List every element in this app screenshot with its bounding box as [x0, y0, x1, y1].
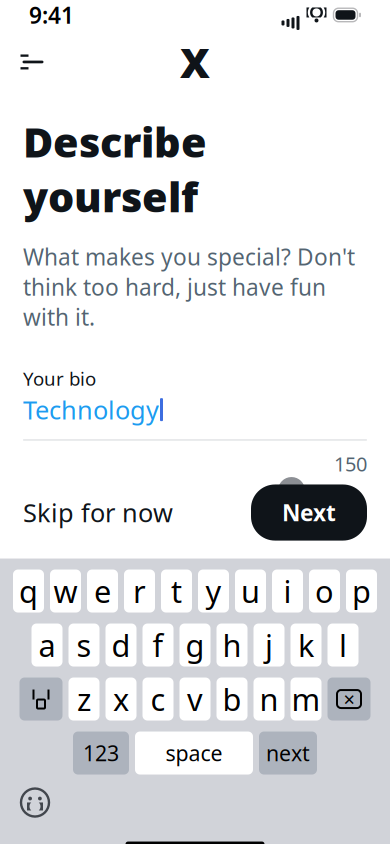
button[interactable]: Next	[251, 484, 367, 541]
staticText: next	[266, 739, 310, 767]
staticText: m	[291, 679, 320, 719]
button[interactable]: v	[179, 677, 210, 720]
staticText: a	[38, 625, 55, 665]
button[interactable]: Shift	[19, 677, 62, 720]
button[interactable]: next	[259, 731, 317, 774]
button[interactable]: c	[142, 677, 173, 720]
button[interactable]: g	[179, 623, 210, 666]
button[interactable]: w	[50, 569, 81, 612]
button[interactable]: Back	[11, 40, 55, 84]
button[interactable]: Skip for now	[23, 484, 173, 541]
staticText: o	[315, 571, 334, 611]
button[interactable]: l	[327, 623, 358, 666]
staticText: g	[185, 625, 204, 665]
staticText: t	[171, 571, 182, 611]
staticText: l	[339, 625, 347, 665]
staticText: i	[283, 571, 291, 611]
staticText: w	[53, 571, 77, 611]
staticText: j	[265, 625, 273, 665]
staticText: Next	[282, 497, 336, 528]
button[interactable]: p	[346, 569, 377, 612]
button[interactable]: Emoji keyboard	[12, 785, 58, 819]
button[interactable]: i	[272, 569, 303, 612]
staticText: p	[352, 571, 371, 611]
staticText: z	[77, 679, 91, 719]
staticText: Your bio	[23, 366, 96, 391]
staticText: Technology	[23, 393, 159, 426]
staticText: u	[241, 571, 260, 611]
staticText: f	[152, 625, 163, 665]
staticText: r	[133, 571, 146, 611]
button[interactable]: j	[253, 623, 284, 666]
button[interactable]: d	[105, 623, 136, 666]
staticText: q	[19, 571, 38, 611]
button[interactable]: y	[198, 569, 229, 612]
button[interactable]: t	[161, 569, 192, 612]
button[interactable]: a	[31, 623, 62, 666]
staticText: x	[113, 679, 129, 719]
button[interactable]: space	[135, 731, 253, 774]
button[interactable]: q	[13, 569, 44, 612]
button[interactable]: b	[216, 677, 247, 720]
staticText: ×	[343, 686, 354, 712]
button[interactable]: X home	[173, 40, 217, 84]
staticText: What makes you special? Don't think too …	[23, 242, 355, 332]
staticText: 150	[334, 450, 367, 477]
staticText: Describe yourself	[23, 114, 207, 224]
staticText: c	[150, 679, 165, 719]
staticText: Skip for now	[23, 496, 173, 529]
staticText: e	[94, 571, 111, 611]
staticText: 9:41	[29, 0, 74, 30]
staticText: v	[187, 679, 203, 719]
staticText: space	[165, 739, 222, 767]
staticText: k	[298, 625, 314, 665]
button[interactable]: n	[253, 677, 284, 720]
button[interactable]: 123	[73, 731, 129, 774]
button[interactable]: e	[87, 569, 118, 612]
staticText: n	[259, 679, 278, 719]
button[interactable]: o	[309, 569, 340, 612]
button[interactable]: k	[290, 623, 321, 666]
button[interactable]: r	[124, 569, 155, 612]
button[interactable]: Delete	[327, 677, 370, 720]
staticText: X	[180, 34, 210, 89]
staticText: h	[222, 625, 241, 665]
staticText: 123	[83, 739, 119, 767]
staticText: s	[76, 625, 91, 665]
staticText: b	[222, 679, 241, 719]
staticText: d	[111, 625, 130, 665]
staticText: y	[205, 571, 221, 611]
button[interactable]: s	[68, 623, 99, 666]
button[interactable]: f	[142, 623, 173, 666]
button[interactable]: u	[235, 569, 266, 612]
button[interactable]: h	[216, 623, 247, 666]
button[interactable]: m	[290, 677, 321, 720]
button[interactable]: x	[105, 677, 136, 720]
button[interactable]: z	[68, 677, 99, 720]
